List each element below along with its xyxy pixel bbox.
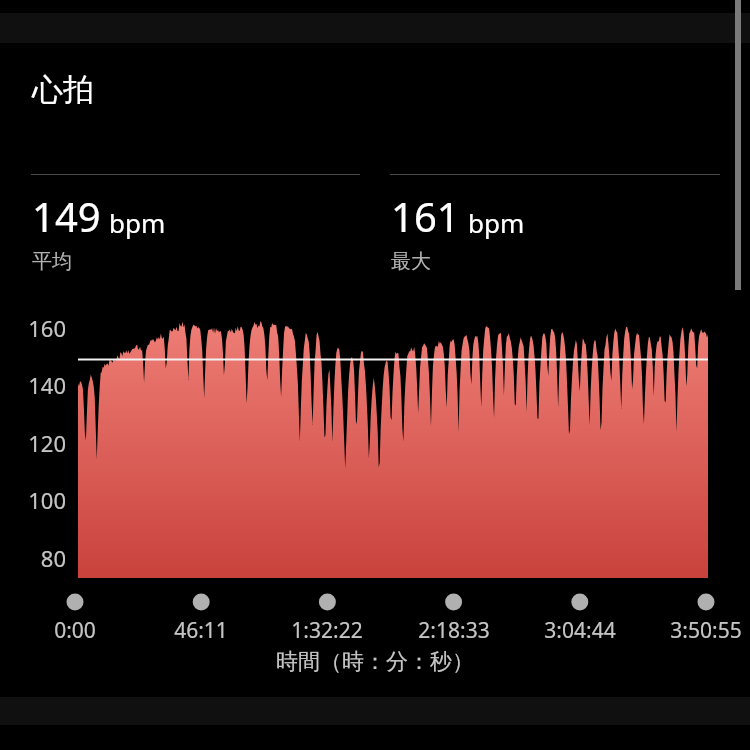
staticText: 140 [0, 370, 66, 400]
staticText: 80 [0, 543, 66, 573]
staticText: 2:18:33 [384, 616, 524, 645]
staticText: 120 [0, 428, 66, 458]
staticText: 160 [0, 313, 66, 343]
staticText: 161 [391, 189, 460, 243]
staticText: 149 [32, 189, 101, 243]
staticText: 平均 [32, 249, 72, 274]
button[interactable]: Average heart rate 149 bpm [31, 174, 360, 274]
staticText: 3:50:55 [636, 616, 750, 645]
staticText: bpm [468, 205, 525, 240]
button[interactable]: 心拍 [30, 68, 96, 111]
staticText: 3:04:44 [510, 616, 650, 645]
staticText: 1:32:22 [257, 616, 397, 645]
staticText: bpm [109, 205, 166, 240]
staticText: 100 [0, 485, 66, 515]
staticText: 時間（時：分：秒） [0, 648, 750, 676]
button[interactable]: Maximum heart rate 161 bpm [390, 174, 720, 274]
staticText: 0:00 [5, 616, 145, 645]
staticText: 46:11 [131, 616, 271, 645]
staticText: 最大 [391, 249, 431, 274]
staticText: 心拍 [32, 70, 94, 109]
